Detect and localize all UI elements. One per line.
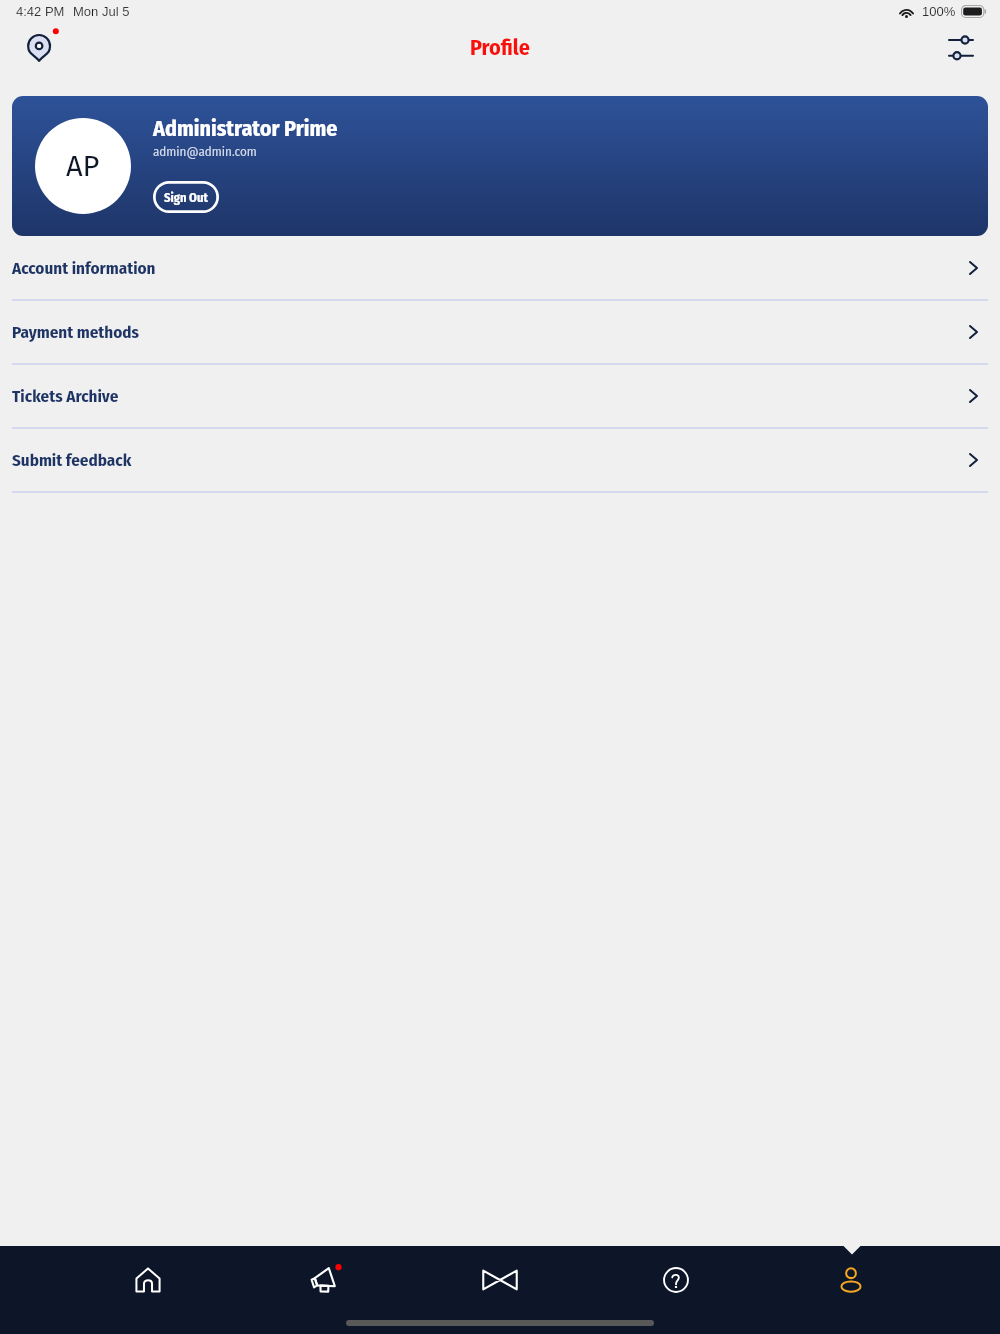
staticText: admin@admin.com — [153, 144, 257, 160]
button[interactable]: Sign Out — [153, 181, 219, 213]
button[interactable]: Tickets — [412, 1246, 588, 1314]
button[interactable]: Profile — [764, 1246, 940, 1314]
button[interactable]: Filters — [946, 32, 976, 62]
staticText: Tickets Archive — [12, 386, 119, 406]
staticText: Administrator Prime — [153, 115, 338, 141]
staticText: Mon Jul 5 — [73, 4, 130, 19]
button[interactable]: Home — [60, 1246, 236, 1314]
staticText: AP — [66, 149, 100, 184]
button[interactable]: Help — [588, 1246, 764, 1314]
staticText: Sign Out — [164, 190, 208, 205]
button[interactable]: Location — [16, 27, 64, 67]
staticText: Payment methods — [12, 322, 140, 342]
button[interactable]: Tickets Archive — [0, 365, 1000, 429]
staticText: 4:42 PM — [16, 4, 65, 19]
button[interactable]: Payment methods — [0, 301, 1000, 365]
staticText: Profile — [470, 34, 530, 60]
staticText: 100% — [922, 4, 956, 19]
button[interactable]: Promotions — [236, 1246, 412, 1314]
button[interactable]: Submit feedback — [0, 429, 1000, 493]
staticText: Submit feedback — [12, 450, 132, 470]
button[interactable]: Account information — [0, 237, 1000, 301]
staticText: Account information — [12, 258, 156, 278]
